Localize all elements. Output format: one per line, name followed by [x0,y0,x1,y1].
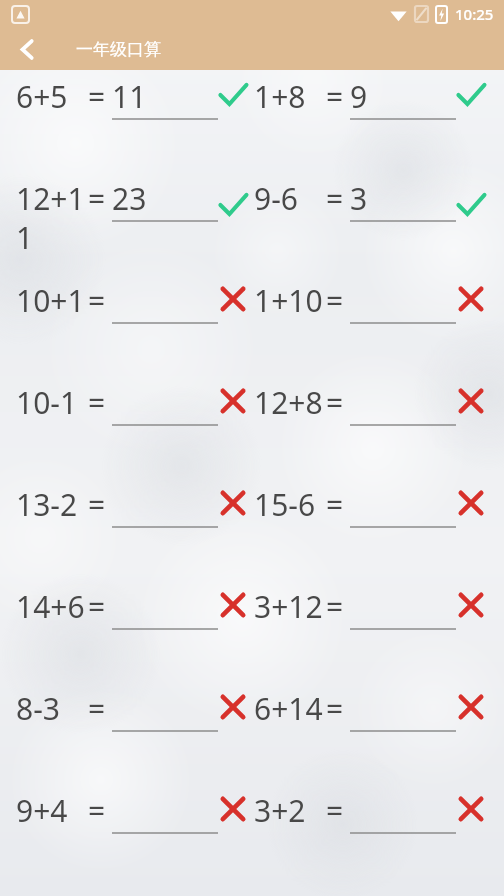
button[interactable]: 10+1 [16,280,254,330]
staticText: 13-2 [16,484,88,525]
staticText: 6+14 [254,688,326,729]
other: Incorrect [218,284,248,314]
button[interactable]: 13-2 [16,484,254,534]
staticText: 1+8 [254,76,326,117]
button[interactable]: 3+2 [254,790,492,840]
staticText: 6+5 [16,76,88,117]
other: Incorrect [218,590,248,620]
button[interactable]: 9+4 [16,790,254,840]
button[interactable]: 1+8 [254,76,492,126]
staticText: 15-6 [254,484,326,525]
staticText: = [88,586,112,627]
other: Incorrect [456,692,486,722]
staticText: 1+10 [254,280,326,321]
other: Correct [456,190,486,220]
button[interactable]: 9-6 [254,178,492,228]
button[interactable]: 15-6 [254,484,492,534]
button[interactable]: 1+10 [254,280,492,330]
staticText: 9-6 [254,178,326,219]
staticText: 3 [350,178,368,219]
staticText: = [326,178,350,219]
other: Correct [456,80,486,110]
other: Incorrect [456,794,486,824]
button[interactable]: 6+14 [254,688,492,738]
button[interactable]: Back [6,28,48,70]
button[interactable]: 12+11 [16,178,254,257]
staticText: = [326,790,350,831]
staticText: 一年级口算 [76,39,161,60]
staticText: = [88,382,112,423]
staticText: 10:25 [455,4,494,24]
staticText: 3+2 [254,790,326,831]
other: Incorrect [218,386,248,416]
staticText: 10+1 [16,280,88,321]
button[interactable]: 6+5 [16,76,254,126]
other: Incorrect [456,386,486,416]
other: Incorrect [456,590,486,620]
staticText: = [326,76,350,117]
staticText: 3+12 [254,586,326,627]
staticText: 14+6 [16,586,88,627]
other: Incorrect [218,794,248,824]
other: Incorrect [218,692,248,722]
button[interactable]: 10-1 [16,382,254,432]
staticText: 9+4 [16,790,88,831]
staticText: 12+11 [16,178,88,257]
button[interactable]: 12+8 [254,382,492,432]
staticText: = [326,382,350,423]
staticText: = [88,790,112,831]
staticText: = [88,280,112,321]
staticText: 11 [112,76,147,117]
staticText: = [88,484,112,525]
staticText: = [326,280,350,321]
other: Correct [218,190,248,220]
button[interactable]: 8-3 [16,688,254,738]
staticText: 23 [112,178,147,219]
staticText: 8-3 [16,688,88,729]
staticText: = [88,178,112,219]
staticText: = [88,76,112,117]
other: Incorrect [456,284,486,314]
other: Incorrect [218,488,248,518]
other: Correct [218,80,248,110]
staticText: 12+8 [254,382,326,423]
staticText: = [326,484,350,525]
staticText: 9 [350,76,368,117]
button[interactable]: 14+6 [16,586,254,636]
staticText: = [326,688,350,729]
staticText: = [326,586,350,627]
other: Incorrect [456,488,486,518]
staticText: = [88,688,112,729]
staticText: 10-1 [16,382,88,423]
button[interactable]: 3+12 [254,586,492,636]
